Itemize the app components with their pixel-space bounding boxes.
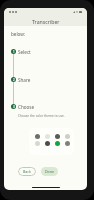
button[interactable]: Done bbox=[41, 167, 58, 176]
button[interactable] bbox=[55, 134, 60, 139]
button[interactable] bbox=[35, 141, 40, 146]
staticText: Share bbox=[18, 77, 31, 83]
staticText: 3 bbox=[13, 105, 15, 109]
button[interactable] bbox=[55, 141, 60, 146]
staticText: Choose the color theme to use. bbox=[18, 114, 65, 118]
button[interactable] bbox=[65, 134, 70, 139]
staticText: 1 bbox=[13, 50, 15, 54]
staticText: Choose bbox=[18, 104, 35, 110]
staticText: Back bbox=[23, 169, 31, 174]
button[interactable]: Back bbox=[18, 167, 36, 176]
staticText: Done bbox=[45, 169, 55, 174]
staticText: 2 bbox=[13, 78, 15, 82]
staticText: Select bbox=[18, 49, 31, 55]
button[interactable] bbox=[45, 141, 50, 146]
button[interactable] bbox=[65, 141, 70, 146]
button[interactable] bbox=[35, 134, 40, 139]
staticText: below: bbox=[11, 31, 26, 37]
button[interactable] bbox=[45, 134, 50, 139]
staticText: Transcriber bbox=[32, 18, 60, 25]
